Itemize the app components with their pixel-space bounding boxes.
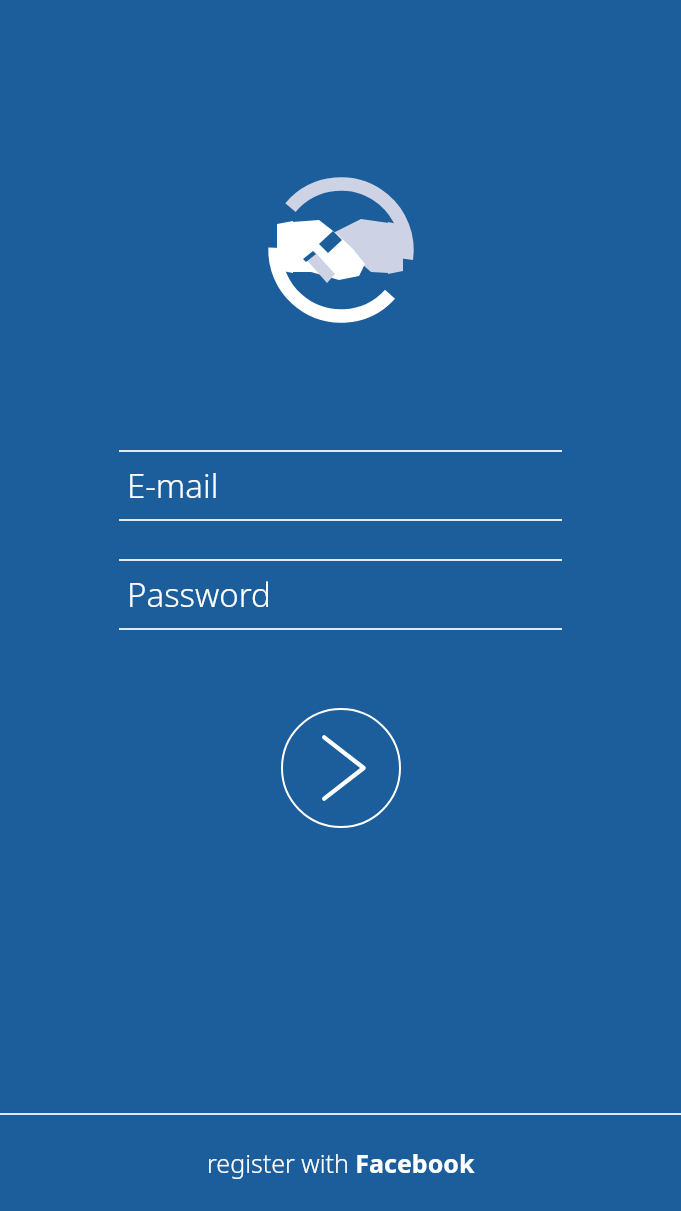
staticText: Password <box>127 572 271 617</box>
button[interactable]: Continue <box>281 708 401 828</box>
button[interactable]: E-mail <box>119 450 562 521</box>
button[interactable]: register with Facebook <box>0 1115 681 1211</box>
other: App logo <box>263 172 419 328</box>
staticText: register with Facebook <box>207 1146 475 1180</box>
staticText: E-mail <box>127 463 219 508</box>
button[interactable]: Password <box>119 559 562 630</box>
